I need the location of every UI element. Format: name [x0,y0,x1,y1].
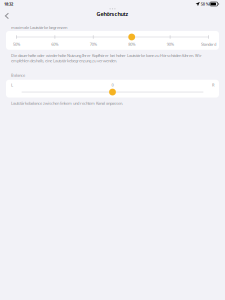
staticText: 18:32 [4,1,13,7]
staticText: Standard [201,41,216,47]
staticText: 90% [167,41,174,47]
staticText: Die dauerhafte oder wiederholte Nutzung … [11,53,202,63]
staticText: maximale Lautstärke begrenzen [11,25,67,30]
staticText: 0 [111,82,113,87]
staticText: 50% [13,41,20,47]
staticText: 80% [128,41,135,47]
staticText: 58 % [200,1,210,7]
staticText: R [212,82,214,87]
button[interactable]: Zurück [0,10,15,22]
staticText: Balance [11,72,25,78]
staticText: 70% [90,41,97,47]
staticText: Gehörschutz [96,10,128,17]
staticText: 60% [51,41,58,47]
staticText: L [11,82,13,87]
staticText: Lautstärkebalance zwischen linkem und re… [11,101,123,106]
